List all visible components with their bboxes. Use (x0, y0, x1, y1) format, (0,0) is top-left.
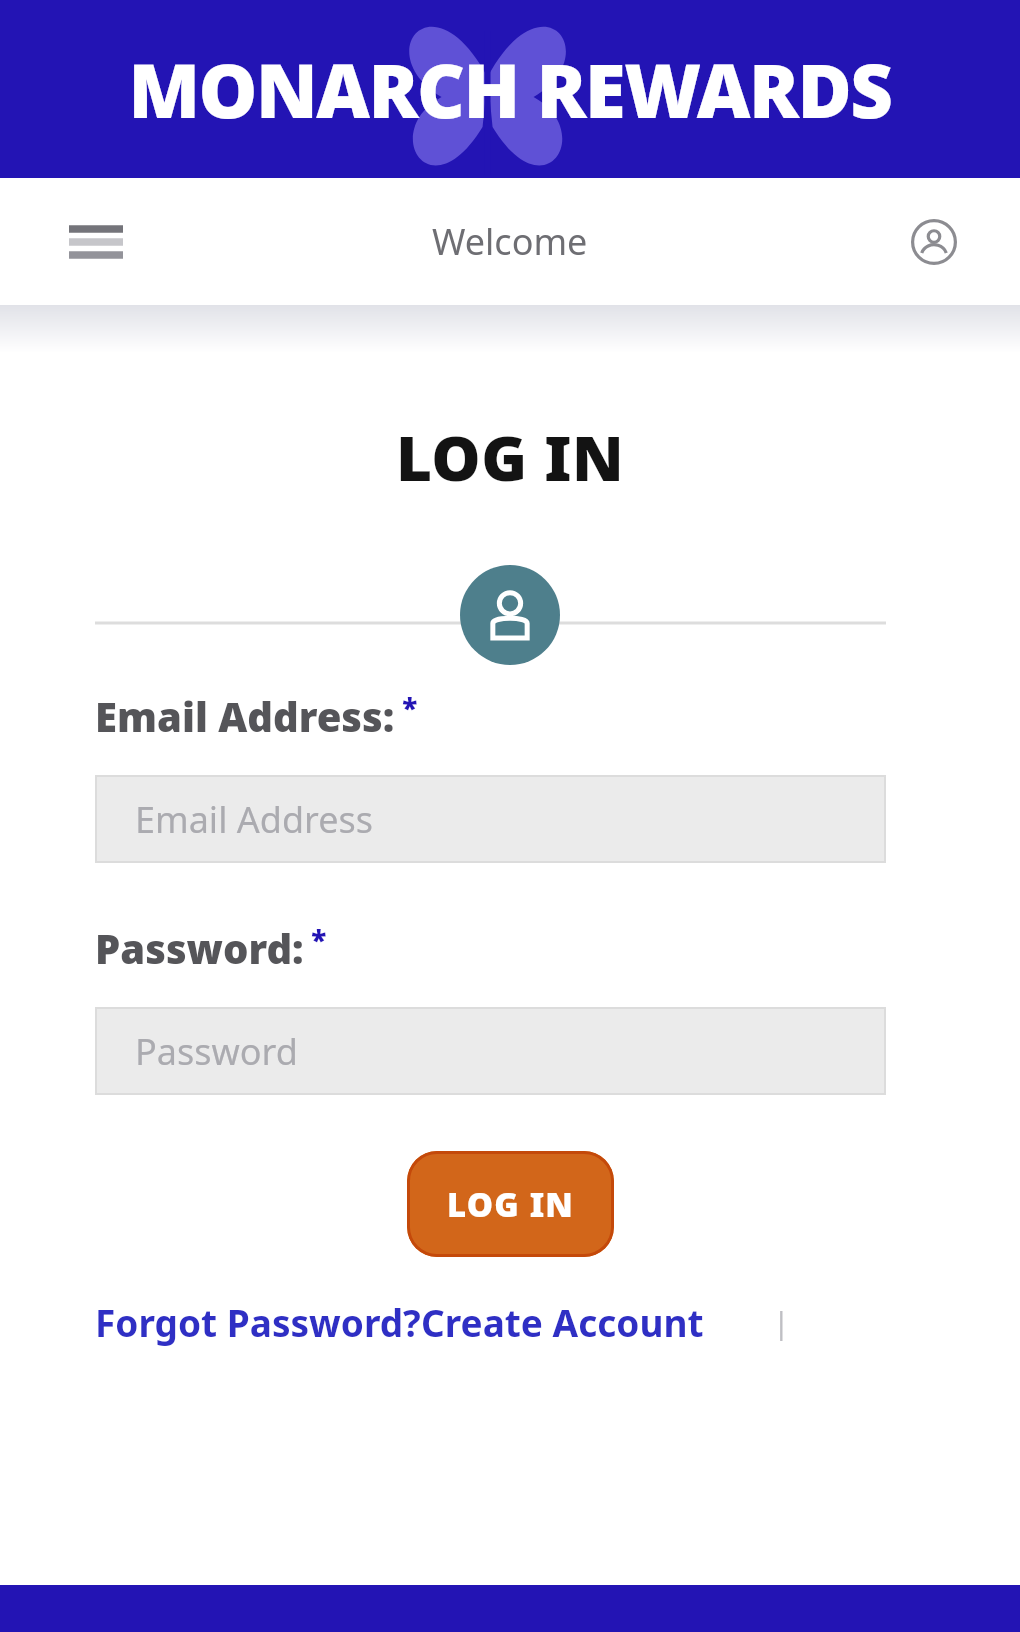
staticText: Welcome (432, 217, 588, 266)
button[interactable]: Email Address (95, 775, 886, 863)
staticText: Email Address: (95, 689, 395, 743)
staticText: * (395, 689, 418, 727)
staticText: | (773, 1302, 790, 1343)
button[interactable]: LOG IN (407, 1151, 614, 1257)
button[interactable]: Password (95, 1007, 886, 1095)
button[interactable]: Open navigation menu (50, 196, 142, 288)
staticText: MONARCH REWARDS (0, 39, 1020, 140)
button[interactable]: Forgot Password? (95, 1297, 421, 1347)
staticText: Password (135, 1027, 298, 1076)
button[interactable]: Account (890, 198, 978, 286)
staticText: LOG IN (447, 1182, 575, 1227)
button[interactable]: Create Account (421, 1297, 704, 1347)
staticText: Password: (95, 921, 304, 975)
staticText: * (304, 921, 327, 959)
staticText: LOG IN (0, 415, 1020, 499)
staticText: Email Address (135, 795, 374, 844)
